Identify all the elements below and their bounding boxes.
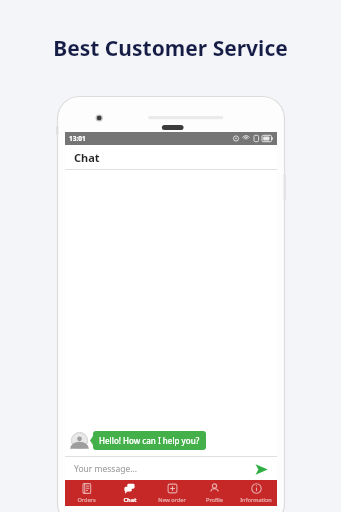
- staticText: Chat: [123, 496, 137, 504]
- button[interactable]: Chat: [108, 480, 151, 506]
- staticText: Profile: [206, 496, 223, 504]
- button[interactable]: Send message: [252, 460, 270, 478]
- button[interactable]: New order: [151, 480, 193, 506]
- button[interactable]: Your message...: [65, 457, 277, 480]
- staticText: Your message...: [74, 463, 252, 475]
- staticText: Orders: [77, 496, 96, 504]
- staticText: Hello! How can I help you?: [99, 435, 200, 446]
- button[interactable]: Orders: [65, 480, 108, 506]
- staticText: Information: [240, 496, 272, 504]
- staticText: Best Customer Service: [53, 34, 288, 63]
- button[interactable]: Profile: [193, 480, 235, 506]
- button[interactable]: Hello! How can I help you?: [93, 431, 206, 450]
- staticText: 13:01: [69, 134, 86, 143]
- staticText: Chat: [74, 150, 100, 165]
- button[interactable]: Information: [235, 480, 277, 506]
- staticText: New order: [158, 496, 186, 504]
